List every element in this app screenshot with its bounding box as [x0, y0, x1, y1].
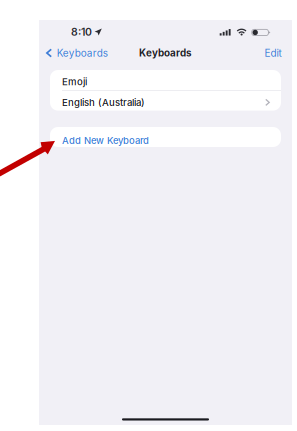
- staticText: Add New Keyboard: [62, 135, 149, 146]
- staticText: Keyboards: [57, 47, 108, 59]
- button[interactable]: Add New Keyboard: [50, 127, 281, 147]
- button[interactable]: Emoji: [50, 70, 281, 90]
- staticText: Keyboards: [139, 47, 192, 59]
- button[interactable]: Keyboards: [39, 46, 114, 60]
- staticText: 8:10: [71, 26, 92, 38]
- button[interactable]: English (Australia): [50, 91, 281, 111]
- staticText: English (Australia): [62, 97, 145, 108]
- button[interactable]: Edit: [256, 46, 292, 60]
- staticText: Emoji: [62, 76, 87, 88]
- staticText: Edit: [264, 47, 281, 59]
